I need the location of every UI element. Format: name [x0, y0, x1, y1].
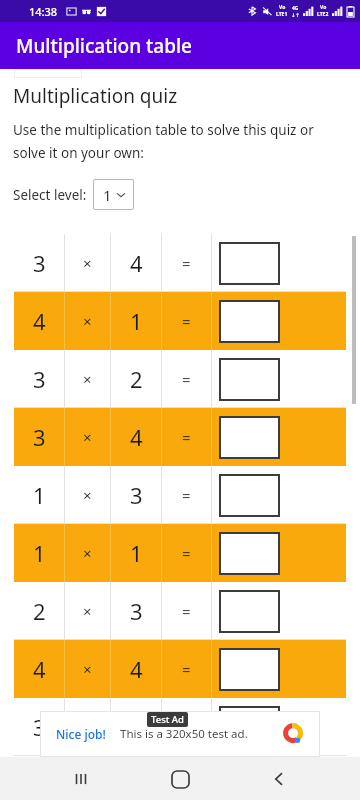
staticText: 2 — [33, 596, 46, 626]
button[interactable] — [219, 706, 280, 749]
button[interactable]: 4 — [14, 292, 346, 350]
other: AdMob — [282, 723, 304, 745]
staticText: 4 — [130, 248, 143, 278]
button[interactable] — [219, 648, 280, 691]
staticText: 4 — [130, 654, 143, 684]
staticText: × — [83, 717, 92, 737]
staticText: Select level: — [13, 186, 87, 204]
staticText: × — [83, 369, 92, 389]
button[interactable]: 3 — [14, 698, 346, 756]
staticText: LTE2 — [317, 11, 329, 18]
button[interactable]: 1 — [14, 466, 346, 524]
staticText: × — [83, 253, 92, 273]
staticText: 1 — [33, 480, 46, 510]
button[interactable] — [219, 474, 280, 517]
staticText: = — [182, 253, 191, 273]
staticText: This is a 320x50 test ad. — [120, 726, 248, 742]
staticText: solve it on your own: — [13, 144, 144, 162]
staticText: 4 — [33, 306, 46, 336]
staticText: 1 — [103, 185, 112, 205]
staticText: 4 — [130, 422, 143, 452]
staticText: ↓↑ — [291, 12, 300, 18]
button[interactable]: 4 — [14, 640, 346, 698]
staticText: 1 — [130, 538, 143, 568]
staticText: = — [182, 717, 191, 737]
staticText: 1 — [33, 538, 46, 568]
staticText: = — [182, 427, 191, 447]
staticText: × — [83, 601, 92, 621]
button[interactable] — [219, 358, 280, 401]
button[interactable] — [219, 532, 280, 575]
staticText: × — [83, 427, 92, 447]
button[interactable]: Recent apps — [64, 762, 98, 796]
staticText: LTE1 — [276, 11, 288, 18]
button[interactable]: 3 — [14, 350, 346, 408]
staticText: 3 — [33, 248, 46, 278]
button[interactable] — [219, 590, 280, 633]
staticText: Test Ad — [151, 713, 184, 726]
staticText: Vo — [320, 4, 327, 11]
staticText: 3 — [130, 480, 143, 510]
button[interactable] — [219, 242, 280, 285]
staticText: 4 — [33, 654, 46, 684]
button[interactable]: 1 — [14, 524, 346, 582]
staticText: 14:38 — [29, 4, 58, 19]
staticText: 3 — [33, 422, 46, 452]
staticText: = — [182, 485, 191, 505]
staticText: = — [182, 369, 191, 389]
staticText: 3 — [33, 712, 46, 742]
staticText: 1 — [130, 712, 143, 742]
staticText: = — [182, 659, 191, 679]
button[interactable]: Multiplication table — [0, 22, 360, 69]
button[interactable]: 1 — [93, 179, 134, 210]
button[interactable]: 3 — [14, 408, 346, 466]
staticText: × — [83, 485, 92, 505]
staticText: × — [83, 311, 92, 331]
staticText: Use the multiplication table to solve th… — [13, 121, 314, 139]
staticText: × — [83, 659, 92, 679]
staticText: Vo — [279, 4, 286, 11]
button[interactable] — [219, 300, 280, 343]
button[interactable]: 2 — [14, 582, 346, 640]
staticText: Multiplication quiz — [13, 83, 178, 109]
button[interactable]: Nice job! — [40, 711, 320, 757]
staticText: 1 — [130, 306, 143, 336]
staticText: = — [182, 543, 191, 563]
staticText: = — [182, 601, 191, 621]
button[interactable]: 3 — [14, 234, 346, 292]
button[interactable]: Back — [262, 762, 296, 796]
staticText: 3 — [33, 364, 46, 394]
button[interactable]: Home — [163, 762, 197, 796]
staticText: Multiplication table — [16, 33, 192, 59]
staticText: Nice job! — [56, 726, 106, 742]
staticText: 2 — [130, 364, 143, 394]
staticText: = — [182, 311, 191, 331]
staticText: 3 — [130, 596, 143, 626]
button[interactable] — [219, 416, 280, 459]
staticText: × — [83, 543, 92, 563]
staticText: 4G — [292, 5, 299, 12]
